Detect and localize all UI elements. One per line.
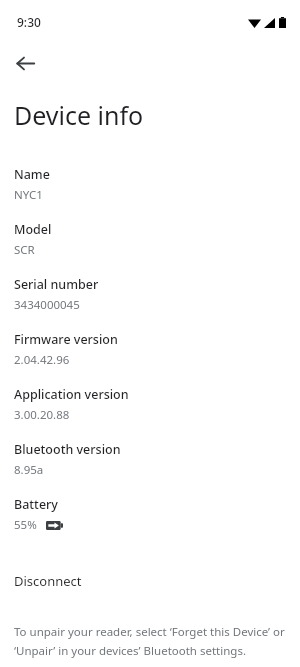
staticText: 3.00.20.88 bbox=[14, 407, 70, 423]
staticText: Serial number bbox=[14, 276, 99, 293]
staticText: Application version bbox=[14, 386, 129, 403]
staticText: Disconnect bbox=[14, 572, 82, 590]
staticText: 3434000045 bbox=[14, 297, 80, 313]
staticText: 55% bbox=[14, 517, 37, 533]
staticText: Bluetooth version bbox=[14, 441, 121, 458]
staticText: Firmware version bbox=[14, 331, 118, 348]
staticText: Name bbox=[14, 166, 50, 183]
staticText: NYC1 bbox=[14, 187, 43, 203]
staticText: 9:30 bbox=[17, 14, 41, 30]
staticText: 8.95a bbox=[14, 462, 44, 478]
staticText: Model bbox=[14, 221, 52, 238]
staticText: Device info bbox=[14, 98, 144, 132]
button[interactable]: Back bbox=[6, 44, 44, 82]
staticText: To unpair your reader, select ‘Forget th… bbox=[14, 624, 286, 658]
button[interactable]: Disconnect bbox=[0, 567, 300, 595]
staticText: SCR bbox=[14, 242, 35, 258]
staticText: 2.04.42.96 bbox=[14, 352, 70, 368]
staticText: Battery bbox=[14, 496, 58, 513]
